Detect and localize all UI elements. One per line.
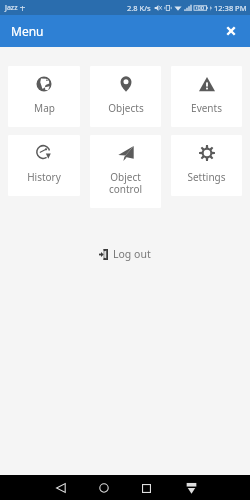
button[interactable]: Back [52,479,70,497]
staticText: Map [34,101,55,115]
button[interactable]: Object control [90,135,161,208]
staticText: Events [191,101,222,115]
staticText: 12:38 PM [214,3,247,13]
staticText: Object control [93,170,158,196]
button[interactable]: Log out [89,242,161,266]
staticText: 2.8 K/s [127,3,151,13]
button[interactable]: Hide keyboard [182,479,200,497]
button[interactable]: History [8,135,80,196]
button[interactable]: Settings [171,135,242,196]
staticText: Menu [11,23,44,39]
button[interactable]: Home [95,479,113,497]
button[interactable]: Recents [137,479,155,497]
button[interactable]: Close [221,21,241,41]
staticText: Log out [113,247,151,261]
staticText: History [27,170,61,184]
button[interactable]: Events [171,66,242,127]
staticText: Objects [108,101,144,115]
button[interactable]: Map [8,66,80,127]
button[interactable]: Objects [90,66,161,127]
staticText: Jazz [5,3,18,13]
staticText: Settings [187,170,226,184]
